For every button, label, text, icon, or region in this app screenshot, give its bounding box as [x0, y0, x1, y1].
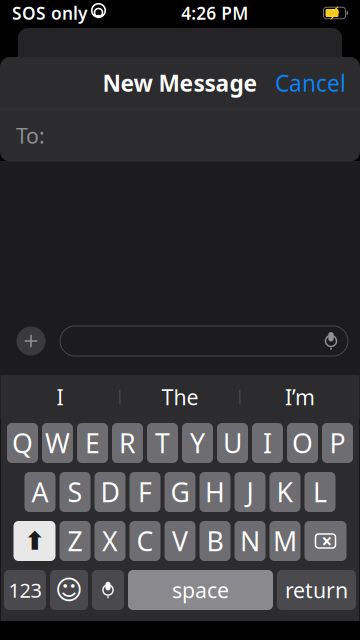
staticText: K	[276, 474, 293, 510]
button[interactable]: K	[269, 472, 300, 512]
button[interactable]: P	[322, 423, 353, 463]
staticText: F	[138, 474, 152, 510]
button[interactable]: Q	[7, 423, 38, 463]
button[interactable]: U	[217, 423, 248, 463]
button[interactable]: I’m	[240, 375, 359, 419]
button[interactable]: S	[59, 472, 90, 512]
button[interactable]: B	[199, 521, 230, 561]
button[interactable]: I	[252, 423, 283, 463]
button[interactable]: F	[129, 472, 160, 512]
button[interactable]: T	[147, 423, 178, 463]
staticText: Z	[67, 523, 82, 559]
button[interactable]: Add attachment	[14, 321, 48, 361]
staticText: ⚡	[327, 6, 342, 20]
button[interactable]: To:	[0, 109, 360, 161]
staticText: D	[100, 474, 119, 510]
button[interactable]: The	[120, 375, 239, 419]
button[interactable]: return	[277, 570, 356, 610]
button[interactable]: Z	[59, 521, 90, 561]
button[interactable]: L	[304, 472, 335, 512]
button[interactable]: G	[164, 472, 195, 512]
staticText: O	[292, 425, 313, 461]
staticText: 123	[8, 577, 41, 603]
staticText: SOS only	[12, 1, 87, 24]
button[interactable]: Cancel	[261, 58, 360, 108]
staticText: V	[172, 523, 188, 559]
button[interactable]: X	[94, 521, 125, 561]
button[interactable]: M	[269, 521, 300, 561]
button[interactable]: I	[0, 375, 119, 419]
staticText: ×	[321, 529, 332, 553]
button[interactable]: O	[287, 423, 318, 463]
staticText: return	[285, 576, 348, 604]
button[interactable]: E	[77, 423, 108, 463]
button[interactable]: H	[199, 472, 230, 512]
staticText: 4:26 PM	[181, 1, 248, 24]
staticText: L	[313, 474, 327, 510]
button[interactable]: R	[112, 423, 143, 463]
button[interactable]: V	[164, 521, 195, 561]
button[interactable]: N	[234, 521, 265, 561]
staticText: G	[170, 474, 189, 510]
staticText: N	[240, 523, 260, 559]
button[interactable]: Delete	[304, 521, 346, 561]
staticText: Y	[190, 425, 205, 461]
staticText: H	[205, 474, 225, 510]
staticText: T	[155, 425, 170, 461]
staticText: S	[67, 474, 82, 510]
staticText: U	[223, 425, 242, 461]
button[interactable]: 123	[4, 570, 46, 610]
staticText: R	[119, 425, 136, 461]
button[interactable]: Dictate	[92, 570, 124, 610]
staticText: J	[246, 474, 253, 510]
staticText: I’m	[285, 383, 315, 411]
staticText: E	[85, 425, 100, 461]
staticText: The	[161, 383, 198, 411]
staticText: M	[273, 523, 297, 559]
staticText: space	[172, 576, 229, 604]
staticText: B	[206, 523, 223, 559]
staticText: To:	[16, 121, 45, 150]
button[interactable]: A	[24, 472, 55, 512]
staticText: Cancel	[275, 68, 346, 98]
button[interactable]: Emoji	[50, 570, 88, 610]
button[interactable]: Shift	[13, 521, 55, 561]
button[interactable]: C	[129, 521, 160, 561]
staticText: W	[45, 425, 70, 461]
staticText: Q	[12, 425, 33, 461]
button[interactable]: D	[94, 472, 125, 512]
staticText: ⬆	[24, 527, 45, 555]
staticText: P	[329, 425, 345, 461]
button[interactable]: Y	[182, 423, 213, 463]
staticText: C	[136, 523, 153, 559]
staticText: X	[102, 523, 118, 559]
staticText: A	[31, 474, 48, 510]
button[interactable]: W	[42, 423, 73, 463]
button[interactable]: J	[234, 472, 265, 512]
staticText: I	[56, 383, 63, 411]
staticText: ☺	[55, 575, 83, 605]
button[interactable]: space	[128, 570, 273, 610]
staticText: New Message	[102, 68, 257, 98]
staticText: I	[263, 425, 272, 461]
